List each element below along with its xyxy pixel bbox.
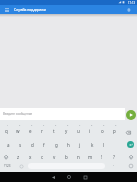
staticText: e [29, 128, 32, 134]
staticText: h [67, 142, 70, 148]
staticText: p [113, 128, 116, 134]
staticText: b [65, 154, 68, 160]
button[interactable]: c [36, 148, 48, 160]
button[interactable] [120, 124, 137, 136]
staticText: g [55, 142, 58, 148]
button[interactable]: u [72, 124, 84, 136]
staticText: n [77, 154, 80, 160]
staticText: d [31, 142, 34, 148]
button[interactable]: m [84, 148, 96, 160]
button[interactable] [118, 160, 137, 172]
staticText: ?123 [4, 164, 11, 168]
button[interactable] [45, 172, 61, 182]
staticText: 9 [103, 124, 105, 127]
staticText: 5 [55, 124, 57, 127]
button[interactable]: j [74, 136, 86, 148]
staticText: a [7, 142, 10, 148]
button[interactable]: f [38, 136, 50, 148]
button[interactable] [77, 172, 93, 182]
staticText: q [5, 128, 8, 134]
button[interactable] [120, 148, 137, 160]
staticText: c [41, 154, 44, 160]
staticText: ? [113, 154, 115, 160]
button[interactable]: n [72, 148, 84, 160]
staticText: 1 [7, 124, 9, 127]
staticText: 17:13 [128, 1, 136, 5]
staticText: 3 [31, 124, 33, 127]
button[interactable]: e [24, 124, 36, 136]
button[interactable]: a [2, 136, 14, 148]
button[interactable]: Введите сообщение [0, 108, 125, 120]
staticText: l [103, 142, 105, 148]
staticText: 4 [43, 124, 45, 127]
button[interactable]: o [96, 124, 108, 136]
staticText: f [43, 142, 45, 148]
button[interactable]: g [50, 136, 62, 148]
button[interactable]: l [98, 136, 110, 148]
button[interactable]: q [0, 124, 12, 136]
button[interactable]: k [86, 136, 98, 148]
button[interactable] [0, 148, 12, 160]
staticText: m [88, 154, 93, 160]
button[interactable]: y [60, 124, 72, 136]
button[interactable] [126, 7, 131, 12]
button[interactable] [110, 136, 137, 148]
staticText: 8 [91, 124, 93, 127]
staticText: j [79, 142, 81, 148]
staticText: y [65, 128, 68, 134]
button[interactable]: r [36, 124, 48, 136]
button[interactable]: x [24, 148, 36, 160]
staticText: x [29, 154, 32, 160]
button[interactable]: b [60, 148, 72, 160]
staticText: w [16, 128, 20, 134]
button[interactable]: w [12, 124, 24, 136]
button[interactable]: p [108, 124, 120, 136]
staticText: t [53, 128, 55, 134]
staticText: Служба поддержки [14, 7, 46, 12]
staticText: 7 [79, 124, 81, 127]
button[interactable] [61, 172, 77, 182]
button[interactable]: ?123 [0, 160, 15, 172]
staticText: 2 [19, 124, 21, 127]
button[interactable]: d [26, 136, 38, 148]
staticText: k [91, 142, 94, 148]
button[interactable]: ! [96, 148, 108, 160]
button[interactable]: i [84, 124, 96, 136]
staticText: v [53, 154, 56, 160]
button[interactable]: s [14, 136, 26, 148]
staticText: Введите сообщение [3, 112, 33, 116]
staticText: . [113, 162, 115, 168]
staticText: z [17, 154, 20, 160]
staticText: 0 [115, 124, 117, 127]
button[interactable]: h [62, 136, 74, 148]
staticText: r [41, 128, 43, 134]
button[interactable] [15, 160, 28, 172]
staticText: o [101, 128, 104, 134]
button[interactable] [4, 7, 9, 12]
button[interactable]: t [48, 124, 60, 136]
staticText: ! [101, 154, 103, 160]
button[interactable] [126, 110, 136, 120]
button[interactable]: z [12, 148, 24, 160]
staticText: u [77, 128, 80, 134]
staticText: s [19, 142, 22, 148]
staticText: 6 [67, 124, 69, 127]
button[interactable]: ? [108, 148, 120, 160]
button[interactable]: v [48, 148, 60, 160]
staticText: i [89, 128, 91, 134]
